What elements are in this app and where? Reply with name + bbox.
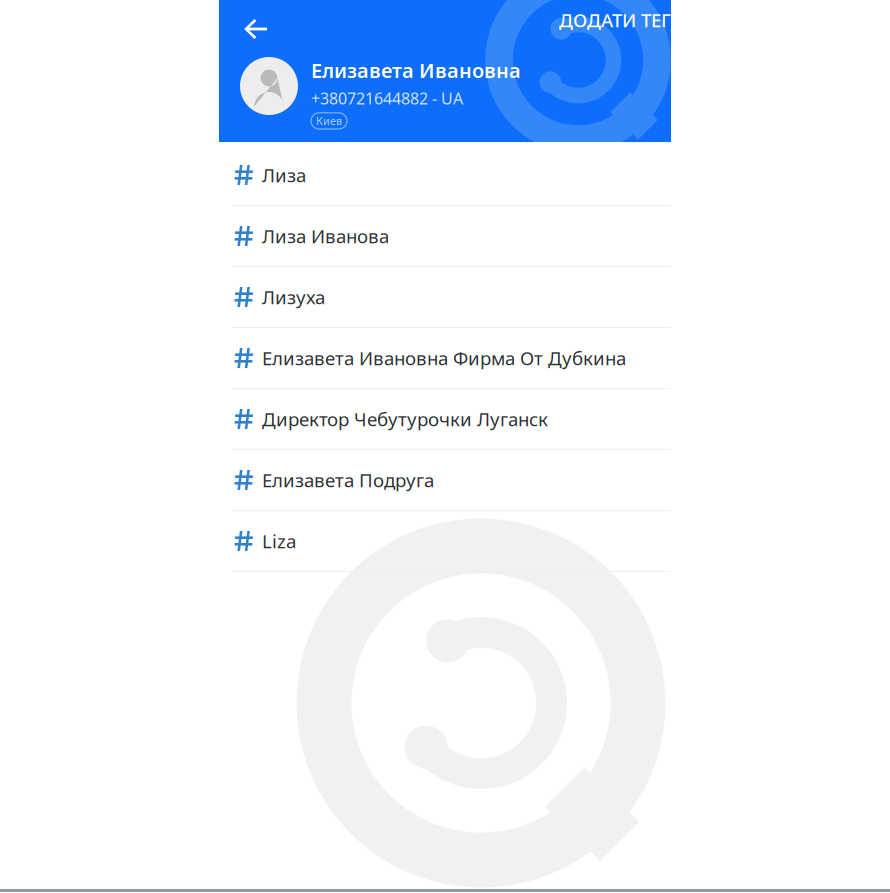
button[interactable]: Лиза Иванова	[219, 206, 671, 267]
staticText: Лизуха	[262, 285, 325, 309]
staticText: Елизавета Ивановна	[311, 57, 521, 84]
staticText: ДОДАТИ ТЕГ	[559, 8, 671, 32]
staticText: Елизавета Ивановна Фирма От Дубкина	[262, 346, 626, 370]
staticText: Киев	[316, 114, 342, 128]
button[interactable]: Елизавета Подруга	[219, 450, 671, 511]
button[interactable]: ДОДАТИ ТЕГ	[547, 0, 671, 40]
button[interactable]: Елизавета Ивановна Фирма От Дубкина	[219, 328, 671, 389]
staticText: +380721644882 - UA	[311, 88, 463, 109]
staticText: Елизавета Подруга	[262, 468, 434, 492]
staticText: Лиза	[262, 163, 306, 187]
staticText: Лиза Иванова	[262, 224, 389, 248]
staticText: Liza	[262, 529, 296, 553]
staticText: Директор Чебутурочки Луганск	[262, 407, 548, 431]
button[interactable]: Лизуха	[219, 267, 671, 328]
button[interactable]: Директор Чебутурочки Луганск	[219, 389, 671, 450]
button[interactable]: Back	[219, 8, 284, 50]
button[interactable]: Лиза	[219, 145, 671, 206]
button[interactable]: Liza	[219, 511, 671, 572]
